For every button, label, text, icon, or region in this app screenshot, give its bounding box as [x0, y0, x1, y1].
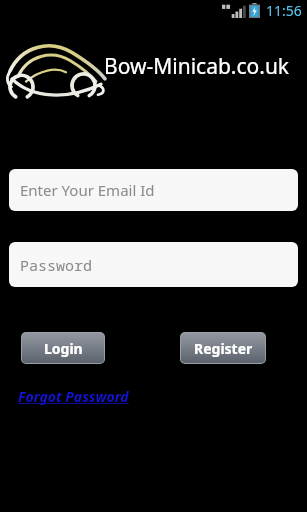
- staticText: Forgot Password: [18, 387, 129, 406]
- staticText: 11:56: [266, 1, 302, 20]
- button[interactable]: Register: [181, 333, 265, 363]
- button[interactable]: Forgot Password: [17, 386, 130, 407]
- button[interactable]: Login: [22, 333, 104, 363]
- staticText: Enter Your Email Id: [20, 180, 155, 200]
- button[interactable]: Enter Your Email Id: [9, 169, 298, 211]
- staticText: Login: [44, 339, 83, 358]
- other: 3G signal: [222, 4, 244, 18]
- button[interactable]: Password: [9, 242, 298, 287]
- staticText: Bow-Minicab.co.uk: [104, 52, 290, 81]
- other: Bow Minicab logo: [6, 38, 106, 104]
- staticText: Register: [194, 339, 253, 358]
- staticText: Password: [20, 255, 93, 275]
- other: Battery charging: [249, 3, 260, 18]
